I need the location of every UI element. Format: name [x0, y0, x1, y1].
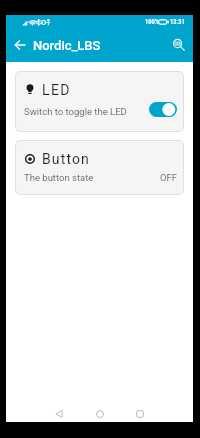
staticText: The button state — [24, 172, 94, 183]
staticText: 13:31 — [170, 18, 185, 26]
button[interactable]: Navigate up — [6, 28, 33, 62]
staticText: LED — [42, 82, 71, 98]
button[interactable]: Recent apps — [125, 405, 155, 422]
staticText: 100% — [145, 18, 159, 26]
staticText: Switch to toggle the LED — [24, 106, 127, 117]
staticText: Nordic_LBS — [33, 38, 101, 53]
button[interactable]: Button — [15, 140, 184, 195]
staticText: OFF — [160, 172, 178, 183]
button[interactable]: Search — [165, 28, 191, 62]
button[interactable]: LED — [15, 71, 184, 132]
button[interactable]: Back — [44, 405, 74, 422]
button[interactable]: Toggle LED — [149, 101, 177, 118]
button[interactable]: Home — [85, 405, 115, 422]
staticText: Button — [42, 151, 90, 167]
